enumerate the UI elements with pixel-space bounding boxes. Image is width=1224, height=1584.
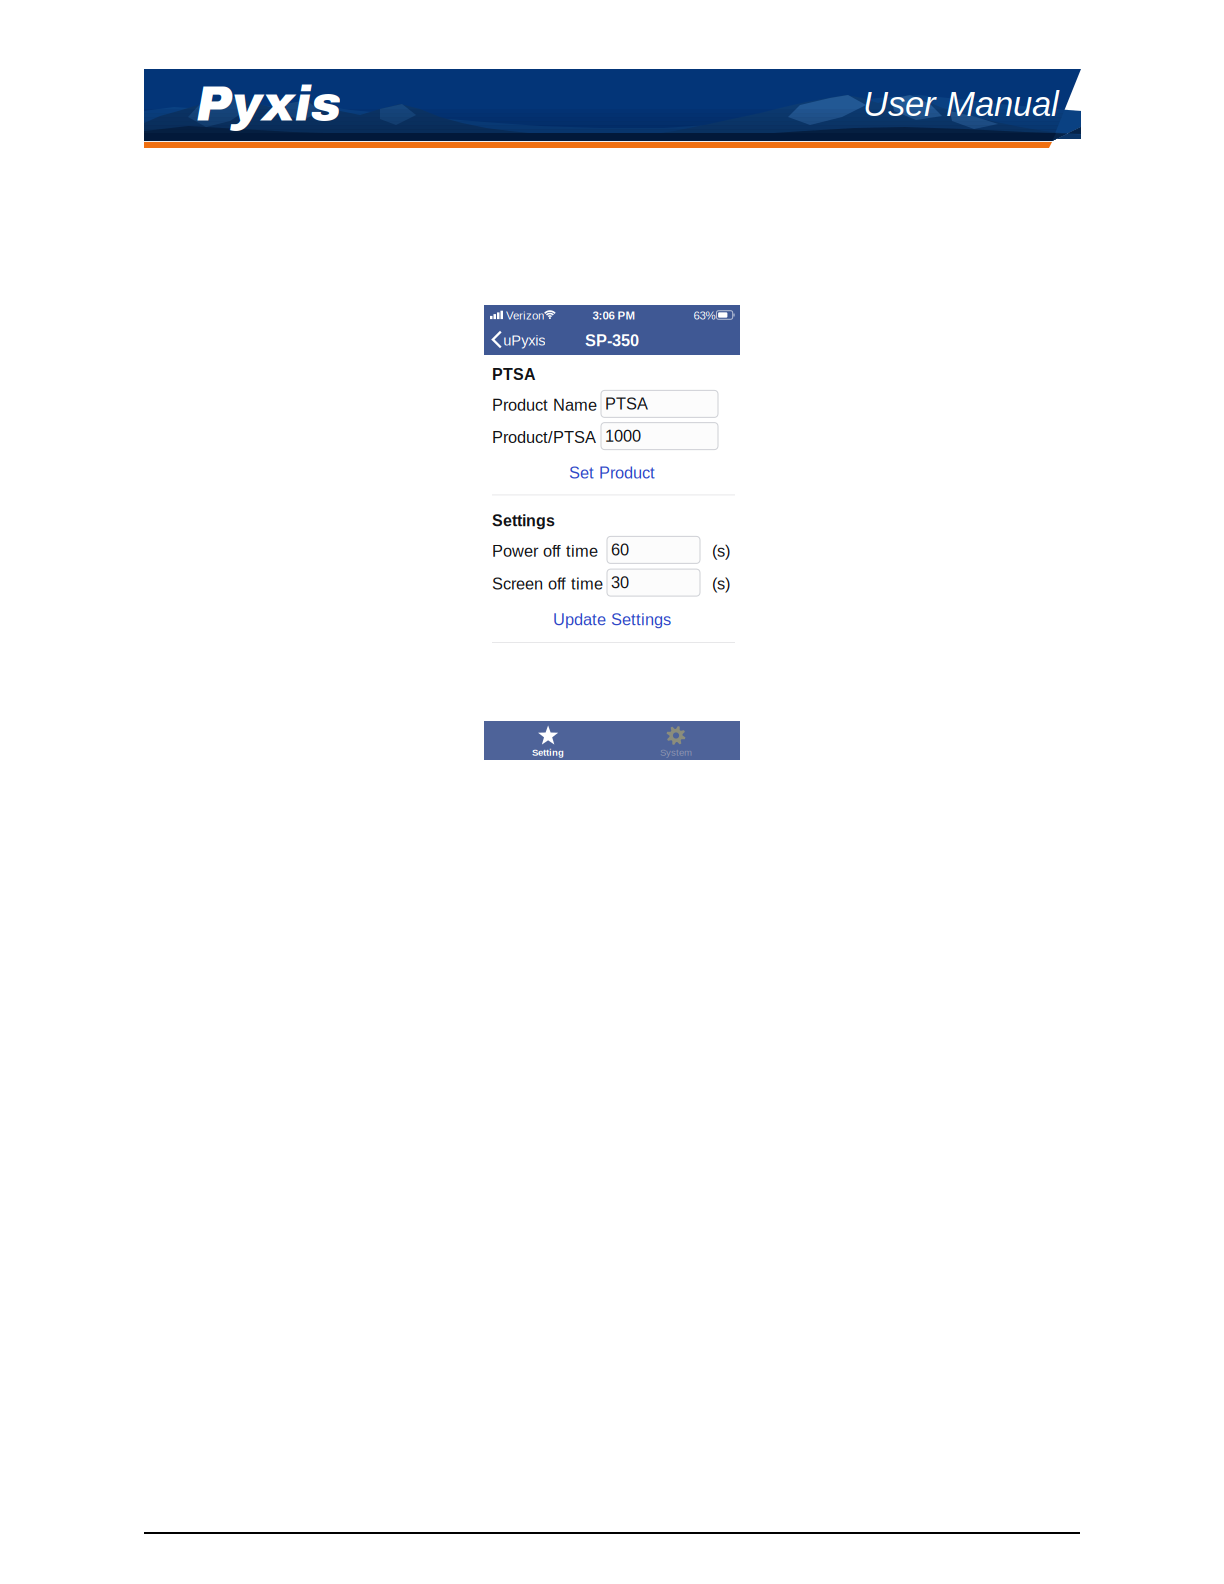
- button[interactable]: Update Settings: [484, 606, 740, 633]
- staticText: PTSA: [492, 365, 536, 383]
- staticText: Settings: [492, 512, 555, 530]
- staticText: uPyxis: [503, 332, 545, 349]
- staticText: (s): [712, 542, 730, 560]
- button[interactable]: System: [612, 721, 740, 760]
- staticText: Setting: [532, 747, 564, 758]
- staticText: 63%: [693, 309, 715, 322]
- staticText: System: [660, 747, 692, 758]
- button[interactable]: Setting: [484, 721, 612, 760]
- staticText: Set Product: [569, 464, 655, 482]
- staticText: 3:06 PM: [592, 309, 635, 322]
- staticText: Update Settings: [553, 610, 671, 629]
- staticText: Product Name: [492, 396, 597, 414]
- staticText: User Manual: [863, 85, 1059, 123]
- staticText: Screen off time: [492, 575, 603, 593]
- button[interactable]: uPyxis: [484, 326, 553, 355]
- staticText: Product/PTSA: [492, 428, 596, 446]
- staticText: SP-350: [585, 331, 639, 350]
- staticText: 1000: [605, 427, 641, 445]
- button[interactable]: Set Product: [484, 459, 740, 486]
- staticText: Verizon: [506, 309, 544, 322]
- staticText: Power off time: [492, 542, 598, 560]
- staticText: (s): [712, 575, 730, 593]
- staticText: 30: [611, 573, 629, 592]
- staticText: Pyxis: [196, 77, 341, 131]
- staticText: PTSA: [605, 395, 648, 413]
- staticText: 60: [611, 541, 629, 559]
